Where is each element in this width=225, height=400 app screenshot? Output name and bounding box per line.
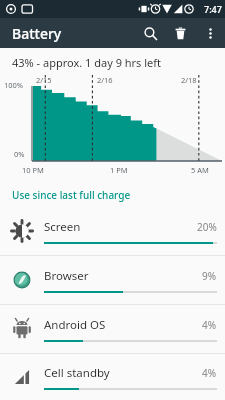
staticText: 10 PM (22, 165, 44, 175)
button[interactable]: Android OS (0, 305, 225, 353)
staticText: 20% (197, 220, 217, 234)
staticText: 4% (202, 318, 217, 332)
button[interactable]: Search (135, 18, 165, 48)
button[interactable]: Battery history chart (0, 73, 225, 181)
button[interactable]: Cell standby (0, 354, 225, 400)
button[interactable]: Browser (0, 256, 225, 304)
staticText: 5 AM (191, 165, 209, 175)
staticText: 7:47 (204, 3, 222, 15)
staticText: Android OS (44, 317, 202, 333)
staticText: 43% - approx. 1 day 9 hrs left (12, 55, 162, 70)
staticText: 2/18 (181, 75, 197, 85)
staticText: Battery (12, 24, 62, 43)
staticText: 9% (202, 269, 217, 283)
button[interactable]: Screen (0, 207, 225, 255)
staticText: 1 PM (110, 165, 128, 175)
staticText: 2/15 (36, 75, 52, 85)
button[interactable]: Delete (165, 18, 195, 48)
button[interactable]: Use since last full charge (12, 188, 131, 202)
staticText: Browser (44, 268, 202, 284)
button[interactable]: More options (195, 18, 225, 48)
staticText: Screen (44, 219, 197, 235)
staticText: 100% (4, 80, 24, 90)
staticText: Cell standby (44, 365, 202, 381)
staticText: 4% (202, 366, 217, 380)
staticText: 0% (14, 149, 25, 159)
staticText: 2/16 (97, 75, 113, 85)
